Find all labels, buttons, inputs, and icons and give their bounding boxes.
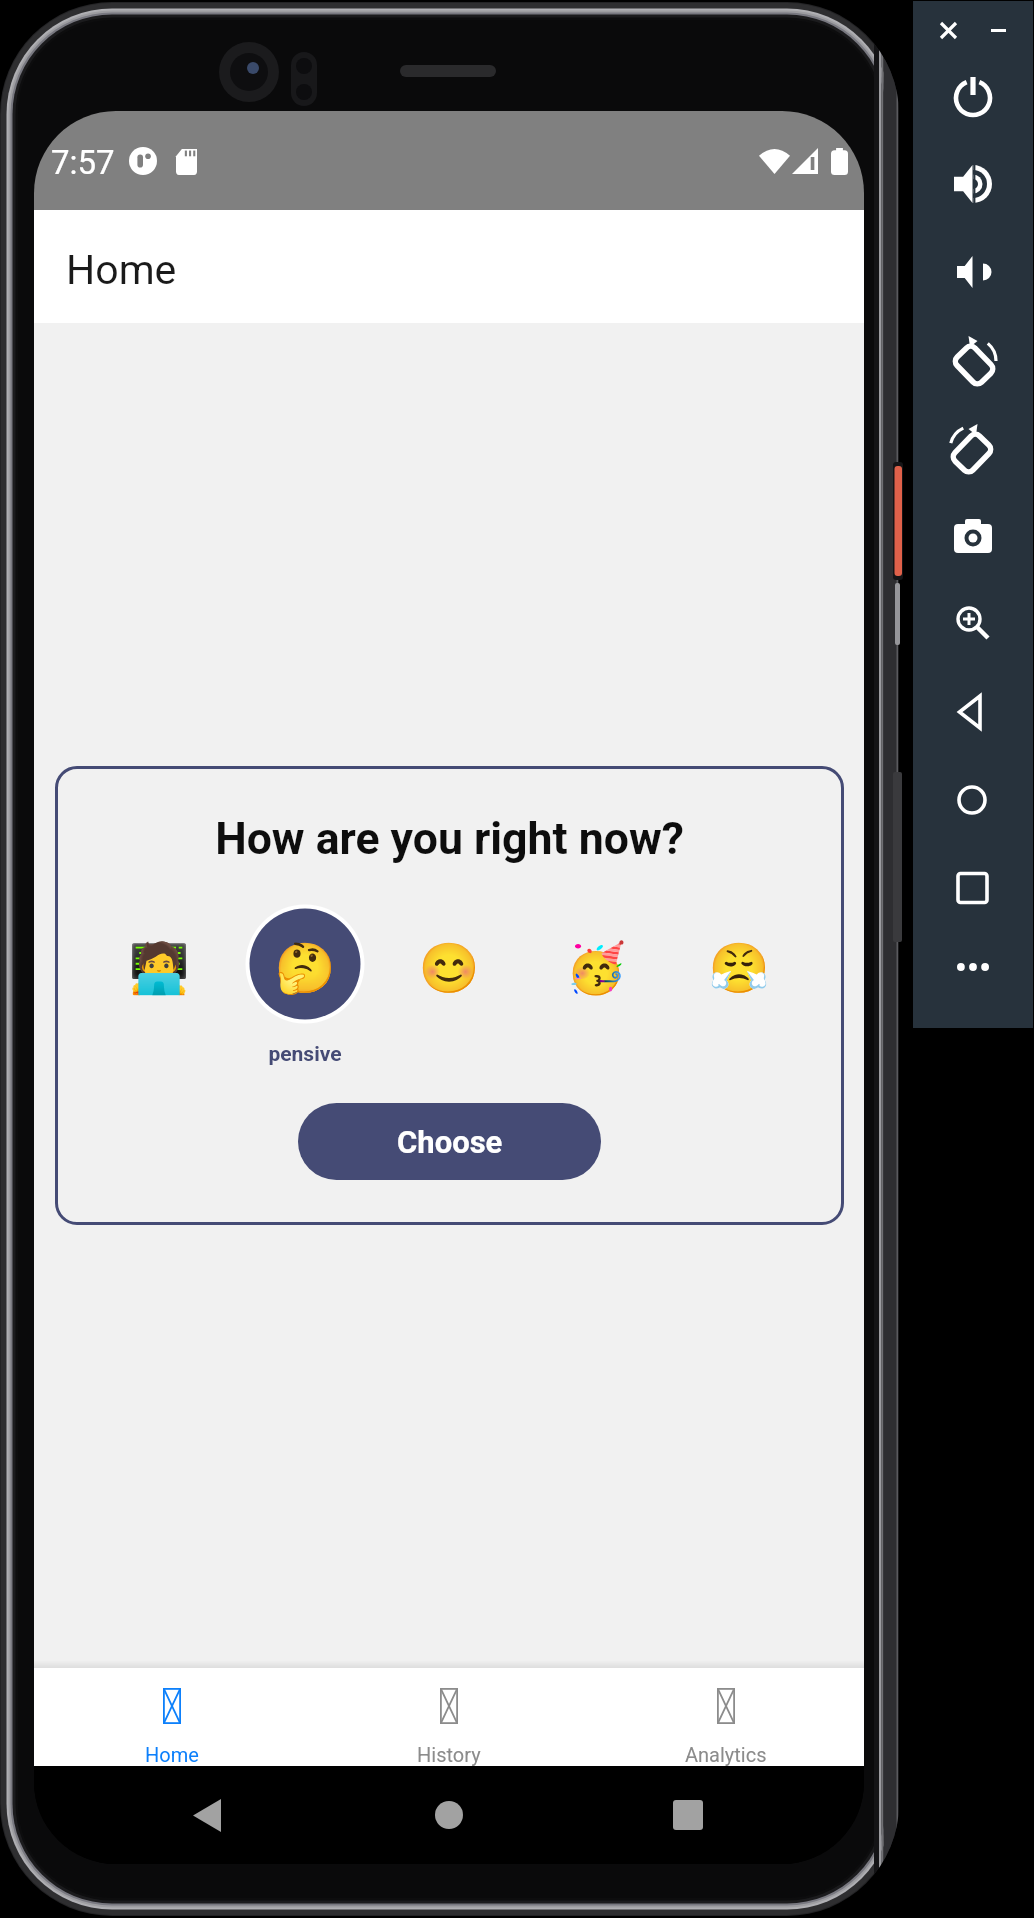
button[interactable]: Volume down	[928, 228, 1018, 316]
button[interactable]: Back	[193, 1799, 221, 1832]
staticText: 🧑‍💻	[128, 940, 190, 997]
button[interactable]: party	[534, 906, 658, 1030]
button[interactable]: Volume up	[928, 140, 1018, 228]
staticText: History	[417, 1743, 481, 1766]
staticText: How are you right now?	[55, 813, 844, 865]
staticText: 🥳	[565, 940, 627, 997]
staticText: pensive	[268, 1042, 342, 1067]
button[interactable]: angry	[677, 906, 801, 1030]
button[interactable]: Close	[926, 8, 970, 52]
button[interactable]: Rotate left	[928, 316, 1018, 404]
staticText: 🤔	[274, 940, 336, 997]
staticText: 😤	[708, 940, 770, 997]
button[interactable]: Power	[928, 52, 1018, 140]
staticText: Home	[66, 246, 177, 294]
staticText: 7:57	[51, 143, 115, 182]
button[interactable]: Back	[928, 668, 1018, 756]
button[interactable]: Choose	[298, 1103, 601, 1180]
staticText: Home	[145, 1743, 199, 1766]
button[interactable]: Home	[928, 756, 1018, 844]
button[interactable]: More	[928, 932, 1018, 1002]
button[interactable]: working	[97, 906, 221, 1030]
staticText: Choose	[397, 1124, 503, 1160]
button[interactable]: Screenshot	[928, 492, 1018, 580]
button[interactable]: Analytics	[587, 1668, 864, 1766]
staticText: 😊	[418, 940, 480, 997]
button[interactable]: Zoom	[928, 580, 1018, 668]
button[interactable]: Recents	[673, 1800, 703, 1830]
button[interactable]: Overview	[928, 844, 1018, 932]
button[interactable]: happy	[387, 906, 511, 1030]
button[interactable]: History	[310, 1668, 587, 1766]
button[interactable]: Home	[34, 1668, 310, 1766]
button[interactable]: Minimize	[976, 8, 1020, 52]
button[interactable]: Home	[435, 1801, 463, 1829]
button[interactable]: pensive	[243, 906, 367, 1030]
staticText: Analytics	[685, 1743, 767, 1766]
button[interactable]: Rotate right	[928, 404, 1018, 492]
